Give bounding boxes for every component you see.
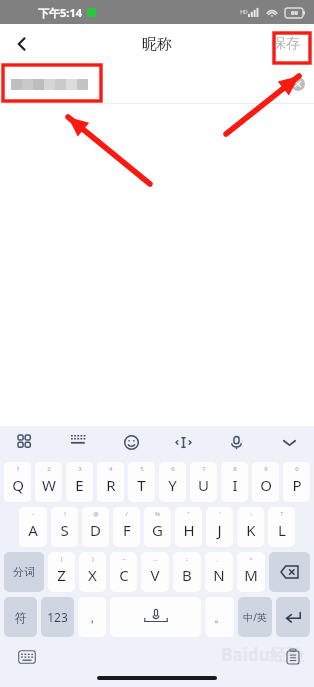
staticText: C: [119, 565, 129, 585]
button[interactable]: Keyboard: [63, 427, 93, 457]
button[interactable]: Hide keyboard: [274, 427, 304, 457]
staticText: !: [64, 510, 66, 518]
staticText: 符: [15, 610, 27, 625]
button[interactable]: @: [82, 507, 109, 547]
staticText: B: [182, 565, 192, 585]
staticText: ^: [249, 555, 253, 563]
staticText: G: [152, 520, 163, 540]
staticText: O: [260, 475, 272, 495]
staticText: 6: [171, 465, 175, 473]
button[interactable]: ): [79, 552, 106, 592]
button[interactable]: Backspace: [269, 552, 310, 592]
button[interactable]: -: [19, 507, 47, 547]
button[interactable]: 分词: [4, 552, 44, 592]
button[interactable]: 8: [221, 462, 248, 502]
staticText: -: [32, 510, 34, 518]
staticText: ': [219, 510, 221, 518]
button[interactable]: ，: [78, 597, 106, 637]
staticText: :: [250, 510, 252, 518]
staticText: W: [42, 475, 56, 495]
staticText: 分词: [13, 565, 35, 579]
staticText: I: [232, 475, 238, 495]
staticText: D: [90, 520, 101, 540]
staticText: M: [244, 565, 258, 585]
button[interactable]: 2: [35, 462, 62, 502]
button[interactable]: ;: [173, 552, 201, 592]
button[interactable]: …: [141, 552, 169, 592]
button[interactable]: 9: [252, 462, 279, 502]
staticText: ): [92, 555, 94, 563]
button[interactable]: Switch keyboard: [16, 646, 38, 668]
staticText: 中/英: [243, 610, 267, 624]
button[interactable]: Clipboard: [282, 646, 304, 668]
button[interactable]: 符: [4, 597, 37, 637]
button[interactable]: Back: [0, 24, 44, 64]
staticText: 、: [216, 555, 222, 563]
staticText: 69: [291, 9, 298, 17]
button[interactable]: %: [144, 507, 171, 547]
button[interactable]: 3: [66, 462, 93, 502]
staticText: A: [28, 520, 38, 540]
button[interactable]: 5: [128, 462, 155, 502]
button[interactable]: ?: [268, 507, 295, 547]
button[interactable]: ^: [237, 552, 265, 592]
button[interactable]: 7: [190, 462, 217, 502]
staticText: 123: [47, 609, 68, 625]
button[interactable]: /: [113, 507, 140, 547]
staticText: Q: [12, 475, 24, 495]
staticText: 3: [78, 465, 82, 473]
staticText: 5: [140, 465, 144, 473]
button[interactable]: ': [206, 507, 233, 547]
staticText: 7: [202, 465, 206, 473]
staticText: L: [278, 520, 286, 540]
staticText: 。: [214, 610, 226, 625]
staticText: ~: [122, 555, 126, 563]
staticText: T: [137, 475, 146, 495]
staticText: (: [61, 555, 63, 563]
button[interactable]: ": [175, 507, 202, 547]
staticText: 8: [233, 465, 237, 473]
staticText: /: [125, 510, 128, 518]
button[interactable]: 123: [41, 597, 74, 637]
button[interactable]: 保存: [266, 31, 306, 57]
staticText: @: [93, 510, 99, 518]
staticText: ;: [186, 555, 188, 563]
staticText: 0: [295, 465, 299, 473]
button[interactable]: Enter: [276, 597, 310, 637]
staticText: J: [217, 520, 222, 540]
button[interactable]: (: [48, 552, 75, 592]
staticText: ，: [86, 610, 98, 625]
button[interactable]: 6: [159, 462, 186, 502]
staticText: ?: [280, 510, 283, 518]
button[interactable]: Text cursor: [168, 427, 198, 457]
button[interactable]: 、: [205, 552, 233, 592]
staticText: 昵称: [142, 35, 172, 54]
button[interactable]: Space, voice input: [110, 597, 201, 637]
button[interactable]: ~: [110, 552, 137, 592]
button[interactable]: Clear text: [286, 72, 310, 96]
button[interactable]: Apps: [10, 427, 40, 457]
staticText: 4: [109, 465, 113, 473]
staticText: 1: [16, 465, 20, 473]
staticText: P: [292, 475, 302, 495]
staticText: U: [198, 475, 209, 495]
staticText: R: [106, 475, 116, 495]
staticText: 9: [264, 465, 268, 473]
staticText: 下午5:14: [38, 5, 82, 20]
button[interactable]: 4: [97, 462, 124, 502]
button[interactable]: 1: [4, 462, 31, 502]
button[interactable]: :: [237, 507, 264, 547]
staticText: Z: [57, 565, 66, 585]
button[interactable]: Voice input: [221, 427, 251, 457]
button[interactable]: !: [51, 507, 78, 547]
button[interactable]: 中/英: [238, 597, 272, 637]
staticText: K: [246, 520, 256, 540]
button[interactable]: 0: [283, 462, 310, 502]
button[interactable]: Emoji: [116, 427, 146, 457]
button[interactable]: 。: [205, 597, 234, 637]
staticText: …: [153, 555, 158, 563]
staticText: X: [88, 565, 97, 585]
staticText: V: [150, 565, 160, 585]
staticText: HD: [240, 9, 248, 16]
staticText: Y: [168, 475, 177, 495]
